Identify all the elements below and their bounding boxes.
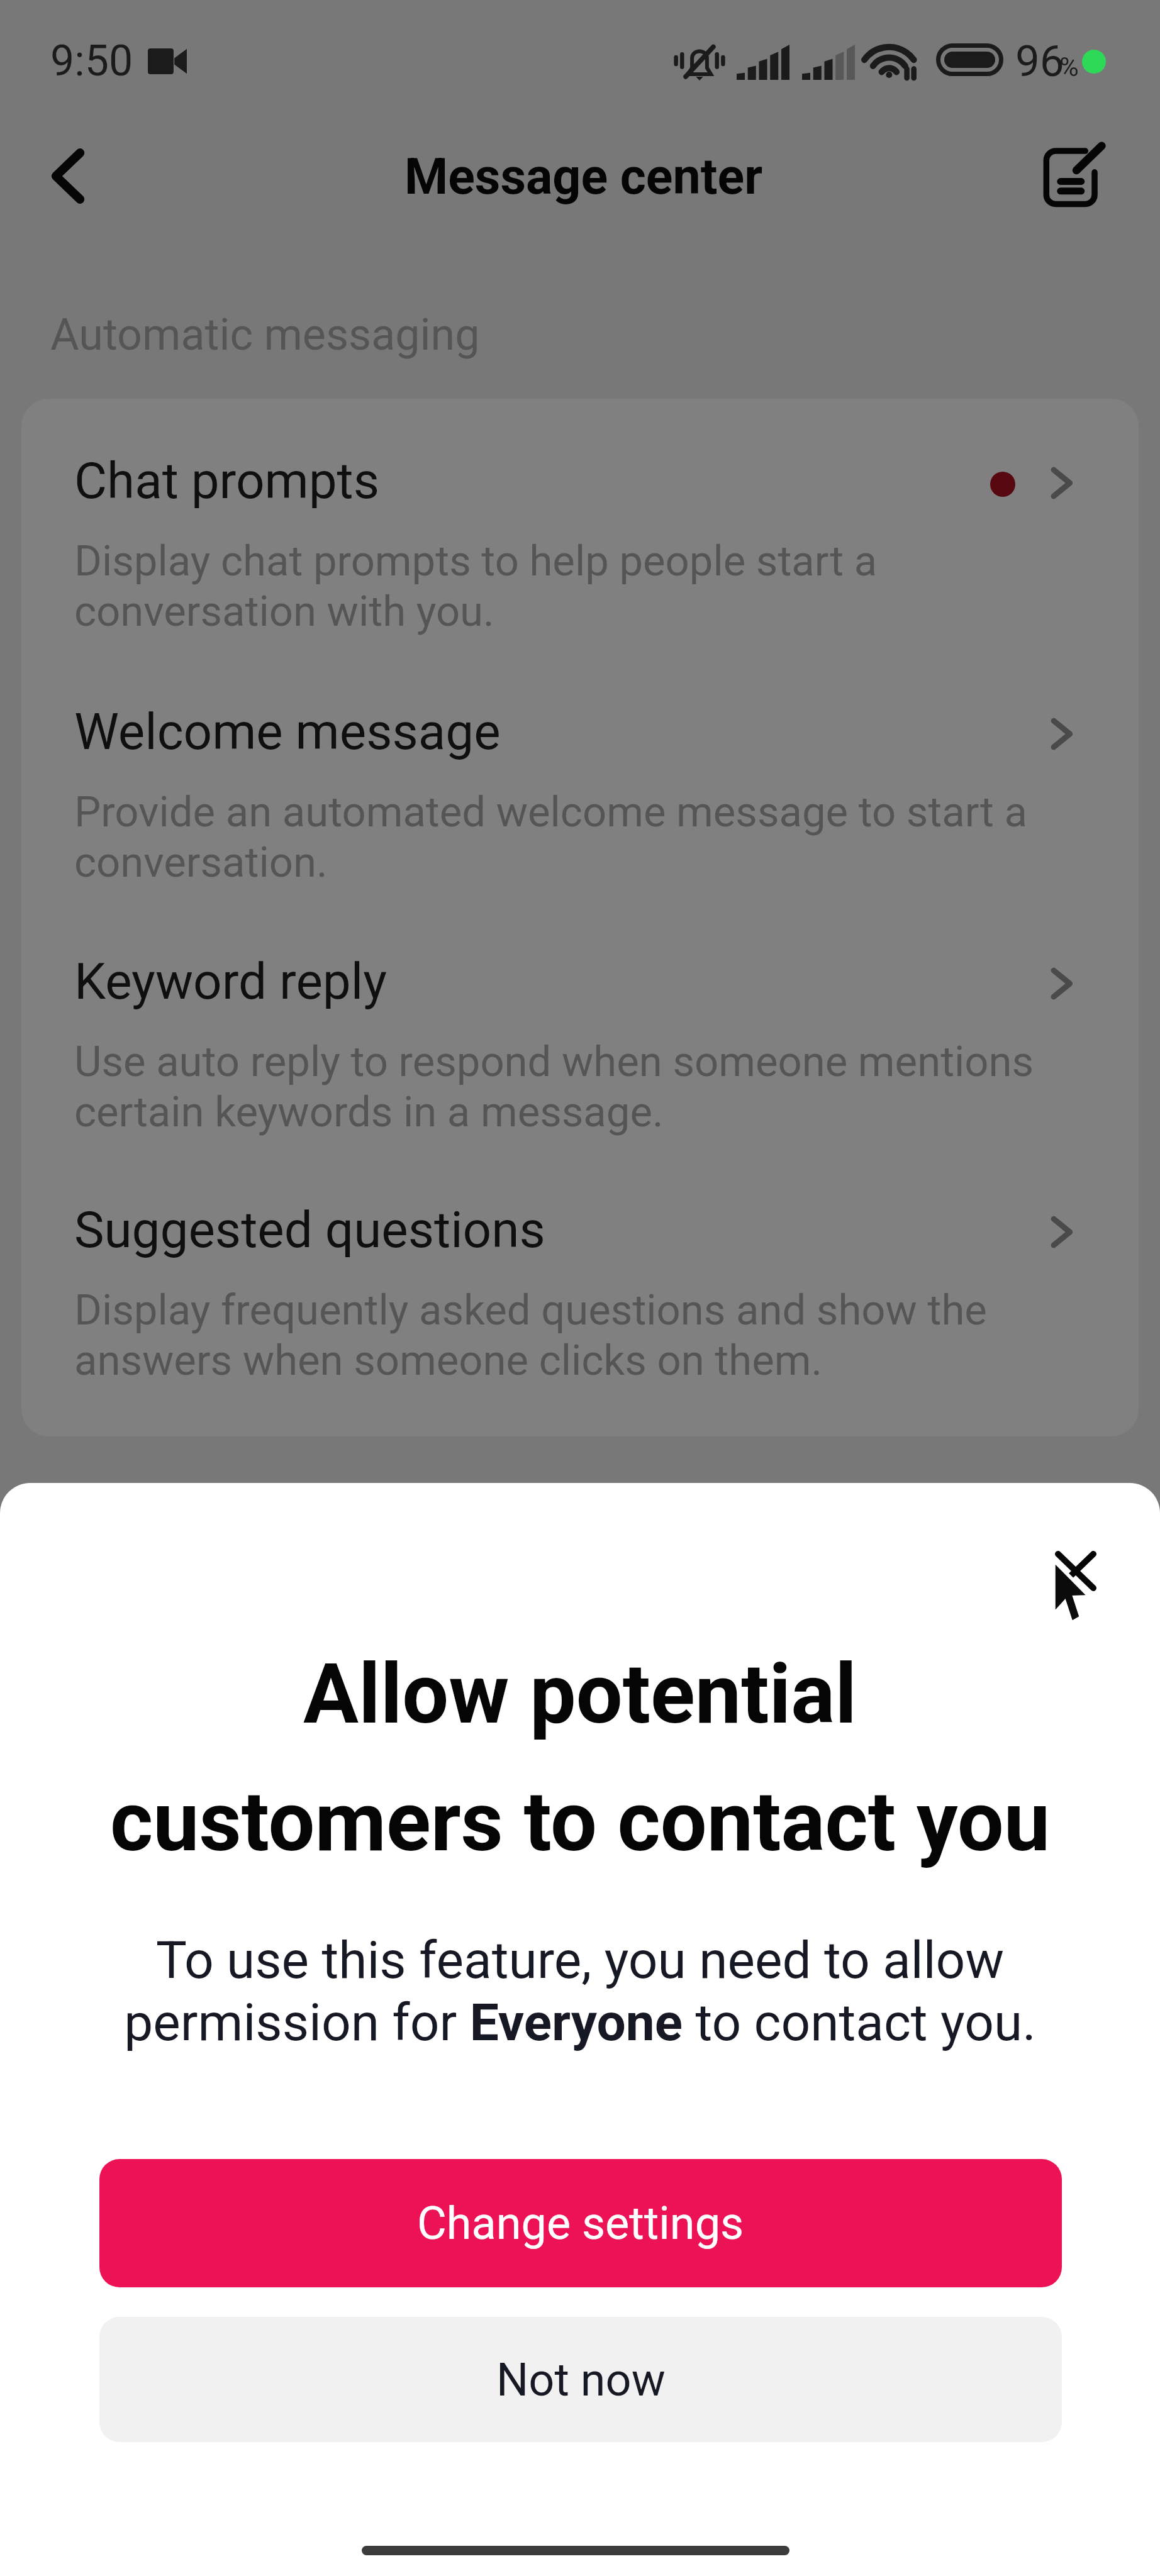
button[interactable]: Chat prompts	[21, 399, 1139, 650]
button[interactable]: Welcome message	[21, 650, 1139, 901]
staticText: Welcome message	[74, 702, 501, 762]
staticText: Automatic messaging	[50, 309, 480, 360]
staticText: Keyword reply	[74, 952, 388, 1011]
staticText: %	[1059, 52, 1079, 82]
button[interactable]: Back	[27, 135, 109, 217]
staticText: To use this feature, you need to allow p…	[77, 1930, 1083, 2053]
staticText: Change settings	[417, 2197, 744, 2250]
staticText: Suggested questions	[74, 1201, 545, 1260]
staticText: Display chat prompts to help people star…	[74, 536, 878, 636]
staticText: Display frequently asked questions and s…	[74, 1285, 987, 1385]
staticText: Allow potential customers to contact you	[104, 1646, 1056, 1870]
staticText: 96	[1015, 36, 1064, 87]
button[interactable]: Close	[1038, 1533, 1113, 1609]
button[interactable]: Suggested questions	[21, 1148, 1139, 1399]
staticText: Provide an automated welcome message to …	[74, 787, 1028, 887]
staticText: Message center	[404, 148, 763, 206]
button[interactable]: Not now	[99, 2317, 1062, 2442]
button[interactable]: Change settings	[99, 2159, 1062, 2287]
staticText: Use auto reply to respond when someone m…	[74, 1037, 1034, 1137]
staticText: 9:50	[50, 36, 133, 86]
button[interactable]: Keyword reply	[21, 899, 1139, 1150]
staticText: Not now	[496, 2353, 666, 2406]
staticText: Chat prompts	[74, 452, 380, 511]
button[interactable]: Compose message	[1023, 127, 1124, 228]
